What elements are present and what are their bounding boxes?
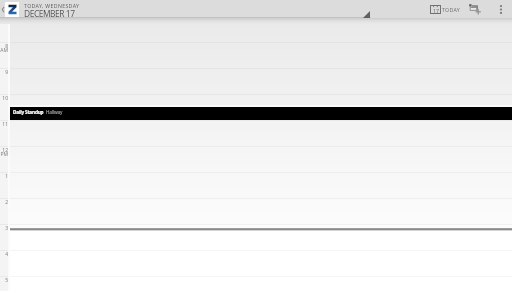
- button[interactable]: Daily Standup: [10, 107, 512, 120]
- staticText: Daily Standup: [13, 109, 44, 115]
- staticText: 12: [0, 147, 8, 154]
- staticText: 1: [0, 173, 8, 180]
- button[interactable]: App logo: [5, 2, 19, 17]
- staticText: 11: [0, 121, 8, 128]
- staticText: 8: [0, 43, 8, 50]
- staticText: 2: [0, 199, 8, 206]
- staticText: PM: [0, 151, 8, 158]
- staticText: DECEMBER 17: [24, 8, 75, 19]
- staticText: 17: [433, 7, 439, 14]
- staticText: 3: [0, 225, 8, 232]
- staticText: 7: [0, 17, 8, 24]
- staticText: TODAY, WEDNESDAY: [24, 2, 80, 9]
- staticText: 9: [0, 69, 8, 76]
- staticText: TODAY: [442, 6, 460, 13]
- staticText: 5: [0, 277, 8, 284]
- staticText: 10: [0, 95, 8, 102]
- button[interactable]: 17: [425, 0, 460, 18]
- staticText: Hallway: [46, 109, 63, 115]
- staticText: 4: [0, 251, 8, 258]
- button[interactable]: New event: [464, 0, 486, 18]
- staticText: AM: [0, 47, 8, 54]
- button[interactable]: More options: [492, 0, 509, 18]
